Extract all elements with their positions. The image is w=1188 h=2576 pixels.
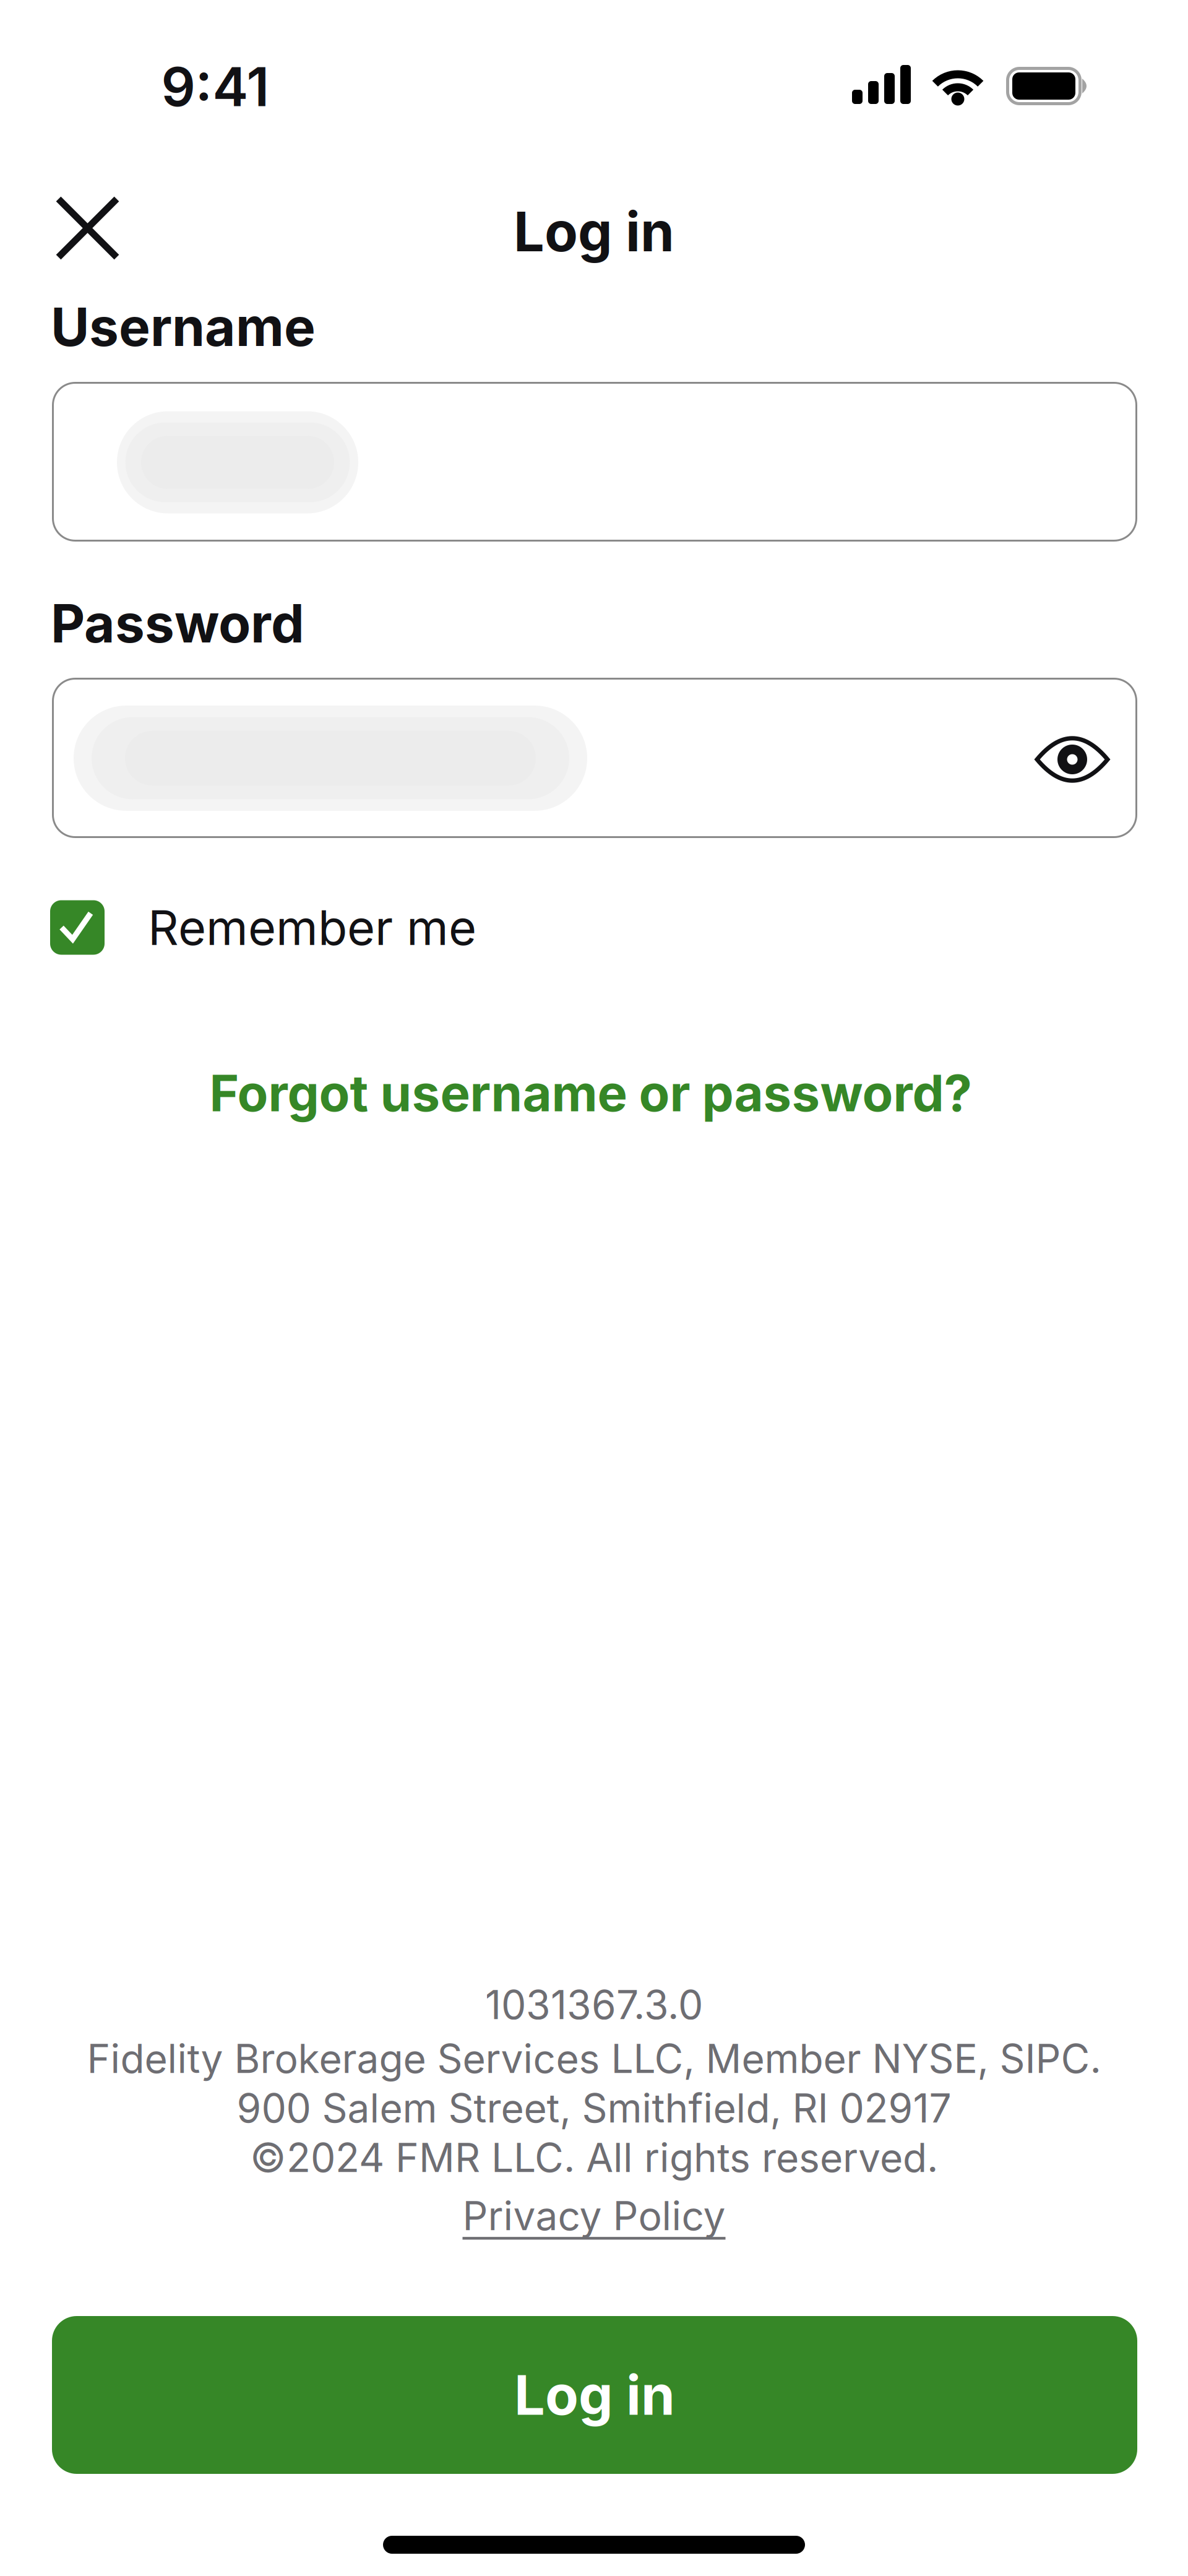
button[interactable]: Username xyxy=(52,382,1137,542)
button[interactable]: Log in xyxy=(52,2316,1137,2474)
button[interactable]: Forgot username or password? xyxy=(209,1063,972,1123)
button[interactable]: Close xyxy=(58,199,117,257)
staticText: Log in xyxy=(514,2363,675,2427)
staticText: Username xyxy=(51,296,316,358)
staticText: 1031367.3.0 xyxy=(485,1981,703,2028)
staticText: Password xyxy=(51,592,304,654)
staticText: Forgot username or password? xyxy=(209,1063,972,1123)
button[interactable]: Show password xyxy=(1032,725,1113,793)
staticText: 900 Salem Street, Smithfield, RI 02917 xyxy=(237,2085,951,2131)
staticText: Privacy Policy xyxy=(463,2192,725,2239)
button[interactable]: Remember me xyxy=(50,899,476,956)
staticText: ©2024 FMR LLC. All rights reserved. xyxy=(250,2134,938,2181)
staticText: Log in xyxy=(514,199,674,264)
staticText: Remember me xyxy=(148,899,476,956)
button[interactable]: Password xyxy=(52,678,1137,838)
button[interactable]: Privacy Policy xyxy=(463,2192,725,2239)
staticText: 9:41 xyxy=(161,55,269,118)
staticText: Fidelity Brokerage Services LLC, Member … xyxy=(87,2035,1101,2082)
